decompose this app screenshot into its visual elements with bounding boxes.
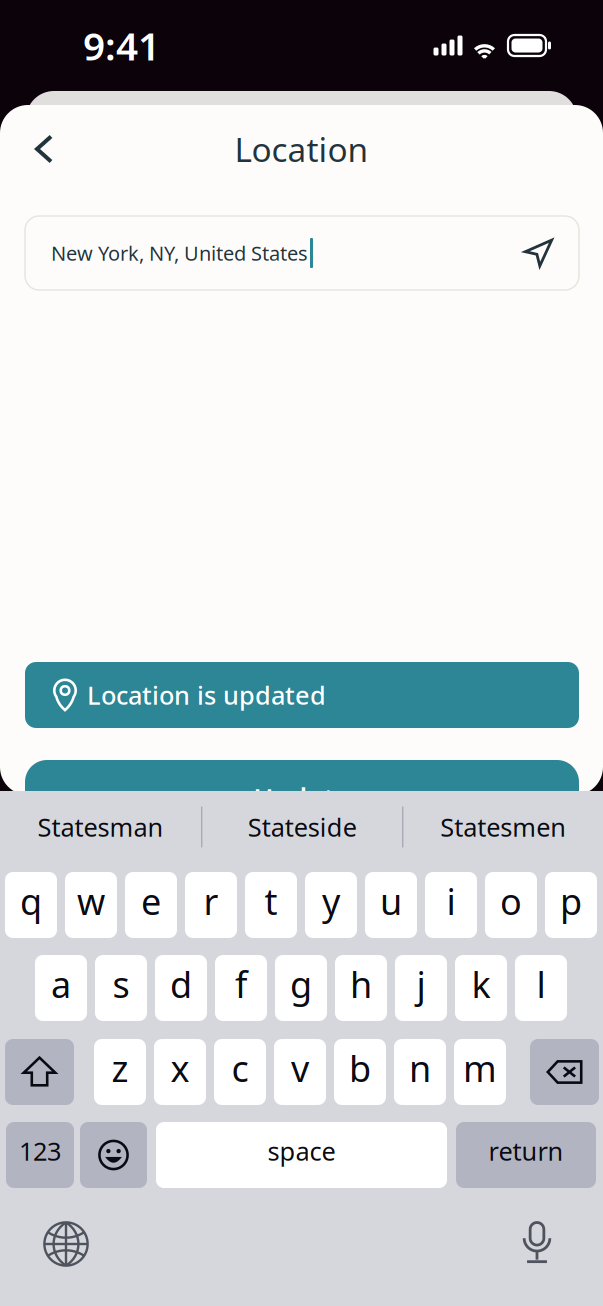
staticText: k (471, 960, 490, 1008)
button[interactable]: Delete (530, 1039, 599, 1105)
button[interactable]: d (155, 955, 207, 1021)
staticText: c (231, 1044, 248, 1092)
button[interactable]: v (274, 1039, 326, 1105)
staticText: u (380, 877, 402, 925)
button[interactable]: s (95, 955, 147, 1021)
button[interactable]: i (425, 872, 477, 938)
button[interactable]: n (394, 1039, 446, 1105)
button[interactable]: y (305, 872, 357, 938)
staticText: v (291, 1044, 309, 1092)
staticText: return (488, 1134, 563, 1168)
button[interactable]: x (154, 1039, 206, 1105)
staticText: x (170, 1044, 189, 1092)
button[interactable]: r (185, 872, 237, 938)
button[interactable]: j (395, 955, 447, 1021)
staticText: j (416, 960, 425, 1008)
button[interactable]: p (545, 872, 597, 938)
staticText: a (51, 960, 71, 1008)
staticText: Statesman (37, 810, 163, 844)
button[interactable]: Dictate (523, 1221, 551, 1264)
button[interactable]: l (515, 955, 567, 1021)
staticText: Statesmen (440, 810, 566, 844)
button[interactable]: o (485, 872, 537, 938)
staticText: n (409, 1044, 431, 1092)
button[interactable]: Update (25, 760, 579, 848)
staticText: t (264, 877, 277, 925)
button[interactable]: m (454, 1039, 506, 1105)
button[interactable]: Stateside (202, 798, 402, 856)
staticText: 123 (19, 1134, 61, 1168)
staticText: h (350, 960, 372, 1008)
button[interactable]: k (455, 955, 507, 1021)
staticText: m (463, 1044, 497, 1092)
staticText: 9:41 (83, 20, 160, 71)
button[interactable]: Next keyboard (43, 1221, 89, 1267)
staticText: New York, NY, United States (51, 240, 308, 266)
button[interactable]: Statesman (0, 798, 201, 856)
button[interactable]: space (156, 1122, 447, 1188)
button[interactable]: Statesmen (403, 798, 603, 856)
button[interactable]: c (214, 1039, 266, 1105)
button[interactable]: b (334, 1039, 386, 1105)
staticText: b (349, 1044, 371, 1092)
staticText: l (536, 960, 545, 1008)
staticText: space (267, 1134, 335, 1168)
staticText: e (141, 877, 161, 925)
staticText: w (77, 877, 105, 925)
staticText: i (446, 877, 455, 925)
staticText: Location is updated (87, 678, 326, 712)
button[interactable]: Emoji (80, 1122, 147, 1188)
button[interactable]: e (125, 872, 177, 938)
button[interactable]: return (456, 1122, 596, 1188)
staticText: g (290, 960, 312, 1008)
staticText: q (20, 877, 42, 925)
staticText: Location (234, 127, 368, 171)
staticText: s (112, 960, 129, 1008)
button[interactable]: q (5, 872, 57, 938)
staticText: d (170, 960, 192, 1008)
button[interactable]: 123 (6, 1122, 74, 1188)
button[interactable]: z (94, 1039, 146, 1105)
button[interactable]: u (365, 872, 417, 938)
button[interactable]: Back (12, 117, 76, 181)
staticText: p (560, 877, 582, 925)
staticText: Stateside (248, 810, 357, 844)
button[interactable]: h (335, 955, 387, 1021)
button[interactable]: w (65, 872, 117, 938)
button[interactable]: t (245, 872, 297, 938)
staticText: o (500, 877, 522, 925)
staticText: y (322, 877, 340, 925)
button[interactable]: a (35, 955, 87, 1021)
staticText: f (235, 960, 247, 1008)
button[interactable]: f (215, 955, 267, 1021)
button[interactable]: g (275, 955, 327, 1021)
staticText: r (203, 877, 218, 925)
button[interactable]: Use current location (524, 238, 553, 267)
staticText: z (111, 1044, 128, 1092)
button[interactable]: Shift (5, 1039, 74, 1105)
staticText: Update (253, 780, 350, 816)
